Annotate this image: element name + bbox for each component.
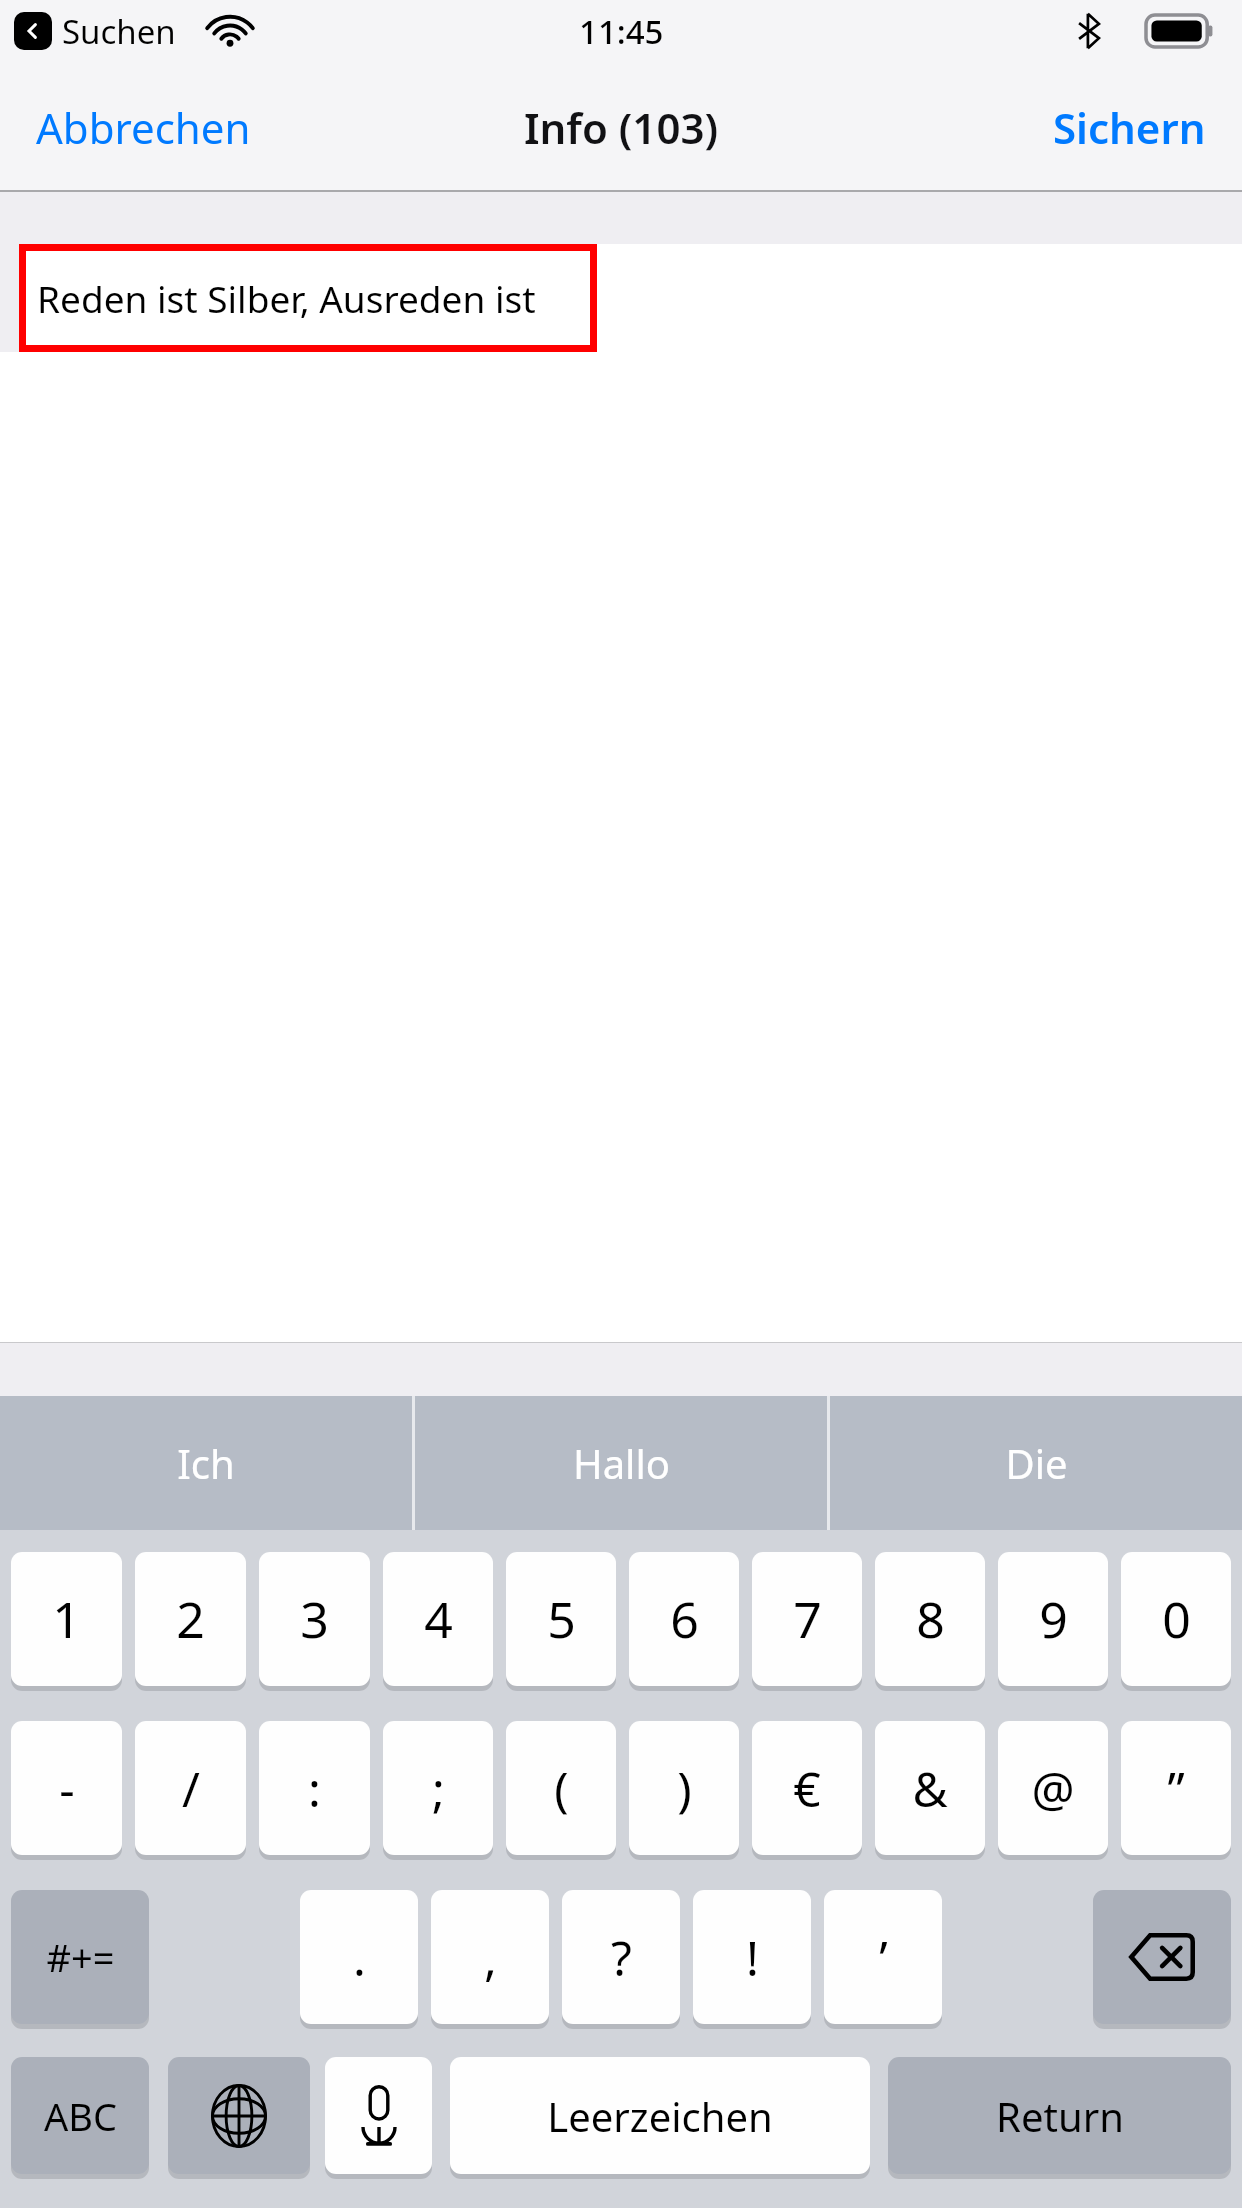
button[interactable]: Reden ist Silber, Ausreden ist Gold!: [26, 251, 590, 345]
staticText: .: [353, 1925, 366, 1990]
button[interactable]: €: [752, 1721, 862, 1855]
button[interactable]: Zurück zu Suchen: [14, 12, 52, 50]
button[interactable]: Abbrechen: [18, 87, 269, 168]
button[interactable]: Return: [888, 2057, 1231, 2174]
staticText: 2: [176, 1585, 205, 1653]
button[interactable]: #+=: [11, 1890, 149, 2024]
button[interactable]: Hallo: [415, 1396, 827, 1530]
staticText: 9: [1039, 1585, 1068, 1653]
button[interactable]: ”: [1121, 1721, 1231, 1855]
staticText: (: [554, 1756, 569, 1821]
button[interactable]: :: [259, 1721, 370, 1855]
button[interactable]: Leerzeichen: [450, 2057, 870, 2174]
button[interactable]: Diktieren: [325, 2057, 432, 2174]
staticText: ): [677, 1756, 692, 1821]
staticText: ?: [611, 1925, 632, 1990]
staticText: 11:45: [579, 9, 664, 54]
staticText: Ich: [177, 1436, 235, 1490]
button[interactable]: 2: [135, 1552, 246, 1686]
staticText: ;: [432, 1756, 445, 1821]
staticText: ”: [1167, 1756, 1185, 1821]
button[interactable]: .: [300, 1890, 418, 2024]
staticText: 8: [916, 1585, 945, 1653]
button[interactable]: Tastatur wechseln: [168, 2057, 310, 2174]
button[interactable]: 9: [998, 1552, 1108, 1686]
button[interactable]: 6: [629, 1552, 739, 1686]
staticText: 5: [547, 1585, 576, 1653]
button[interactable]: ?: [562, 1890, 680, 2024]
staticText: Info (103): [524, 99, 719, 156]
button[interactable]: @: [998, 1721, 1108, 1855]
staticText: 6: [670, 1585, 699, 1653]
staticText: &: [912, 1756, 948, 1821]
staticText: Sichern: [1053, 99, 1206, 156]
button[interactable]: ABC: [11, 2057, 149, 2174]
staticText: @: [1031, 1756, 1075, 1821]
button[interactable]: -: [11, 1721, 122, 1855]
button[interactable]: /: [135, 1721, 246, 1855]
button[interactable]: 8: [875, 1552, 985, 1686]
staticText: ’: [879, 1925, 888, 1990]
staticText: -: [59, 1756, 75, 1821]
button[interactable]: 3: [259, 1552, 370, 1686]
button[interactable]: ;: [383, 1721, 493, 1855]
staticText: ,: [484, 1925, 497, 1990]
staticText: 1: [52, 1585, 81, 1653]
button[interactable]: ): [629, 1721, 739, 1855]
button[interactable]: Sichern: [1035, 87, 1224, 168]
button[interactable]: ,: [431, 1890, 549, 2024]
staticText: Suchen: [62, 9, 176, 54]
staticText: 0: [1162, 1585, 1191, 1653]
button[interactable]: !: [693, 1890, 811, 2024]
staticText: 4: [424, 1585, 453, 1653]
staticText: /: [182, 1756, 200, 1821]
button[interactable]: 1: [11, 1552, 122, 1686]
button[interactable]: 0: [1121, 1552, 1231, 1686]
staticText: :: [308, 1756, 321, 1821]
button[interactable]: Löschen: [1093, 1890, 1231, 2024]
staticText: Abbrechen: [36, 99, 251, 156]
staticText: Leerzeichen: [547, 2089, 773, 2143]
staticText: Return: [996, 2089, 1124, 2143]
staticText: Reden ist Silber, Ausreden ist Gold!: [37, 273, 590, 323]
button[interactable]: 4: [383, 1552, 493, 1686]
staticText: Die: [1005, 1436, 1068, 1490]
button[interactable]: 5: [506, 1552, 616, 1686]
staticText: ABC: [44, 2090, 117, 2142]
staticText: !: [746, 1925, 759, 1990]
staticText: #+=: [46, 1931, 115, 1983]
button[interactable]: ’: [824, 1890, 942, 2024]
staticText: 3: [300, 1585, 329, 1653]
button[interactable]: (: [506, 1721, 616, 1855]
button[interactable]: Ich: [0, 1396, 412, 1530]
staticText: 7: [793, 1585, 822, 1653]
staticText: €: [793, 1756, 821, 1821]
button[interactable]: 7: [752, 1552, 862, 1686]
button[interactable]: Die: [830, 1396, 1242, 1530]
button[interactable]: &: [875, 1721, 985, 1855]
staticText: Hallo: [573, 1436, 670, 1490]
